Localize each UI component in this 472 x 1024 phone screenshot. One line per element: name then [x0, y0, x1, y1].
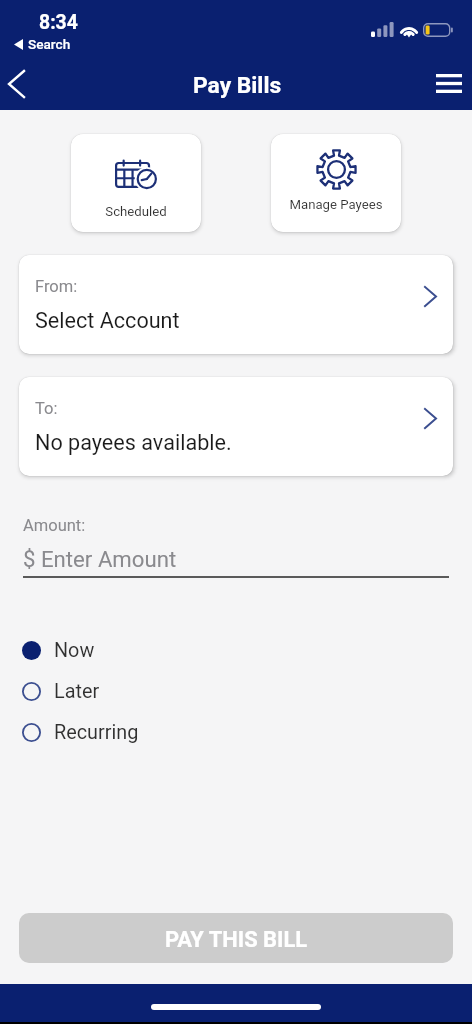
button[interactable]: From:	[19, 255, 453, 354]
staticText: $ Enter Amount	[23, 546, 177, 572]
staticText: Select Account	[35, 308, 180, 333]
button[interactable]: Scheduled	[71, 134, 201, 232]
staticText: From:	[35, 277, 78, 296]
staticText: To:	[35, 399, 58, 418]
button[interactable]: PAY THIS BILL	[19, 913, 453, 963]
staticText: Scheduled	[105, 204, 167, 219]
staticText: PAY THIS BILL	[165, 927, 308, 953]
button[interactable]: Now	[0, 630, 472, 671]
staticText: Manage Payees	[289, 197, 383, 212]
staticText: 8:34	[39, 11, 78, 34]
button[interactable]: Back	[0, 59, 41, 109]
staticText: Pay Bills	[193, 72, 282, 99]
button[interactable]: Recurring	[0, 712, 472, 753]
staticText: Recurring	[54, 721, 139, 744]
button[interactable]: Manage Payees	[271, 134, 401, 232]
button[interactable]: Menu	[421, 57, 472, 109]
staticText: Later	[54, 680, 100, 703]
staticText: Now	[54, 639, 95, 662]
button[interactable]: Later	[0, 671, 472, 712]
staticText: Amount:	[23, 516, 86, 535]
staticText: Search	[28, 36, 71, 52]
button[interactable]: To:	[19, 377, 453, 476]
staticText: No payees available.	[35, 430, 232, 455]
